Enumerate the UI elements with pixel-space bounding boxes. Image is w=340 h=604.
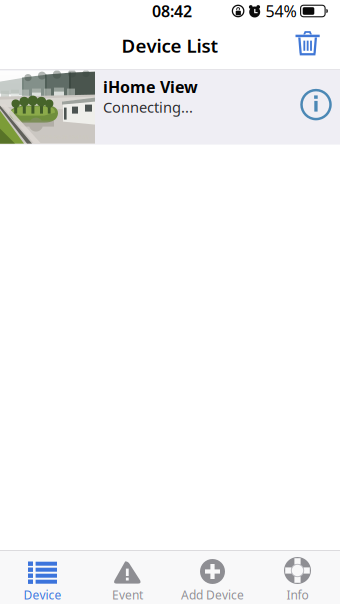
staticText: Connecting... (103, 97, 193, 117)
staticText: Add Device (181, 587, 244, 603)
button[interactable]: Event (85, 551, 170, 604)
staticText: Event (112, 587, 143, 603)
button[interactable]: 2019-06-26 10:41:55 (0, 70, 340, 145)
staticText: Device List (121, 33, 218, 58)
button[interactable]: Device (0, 551, 85, 604)
staticText: 08:42 (152, 0, 192, 22)
staticText: Device (23, 587, 61, 603)
button[interactable]: Add Device (170, 551, 255, 604)
staticText: iHome View (103, 76, 198, 97)
button[interactable]: Delete (286, 23, 329, 67)
button[interactable]: Info (255, 551, 340, 604)
staticText: 54% (266, 0, 297, 22)
staticText: Info (286, 587, 308, 603)
